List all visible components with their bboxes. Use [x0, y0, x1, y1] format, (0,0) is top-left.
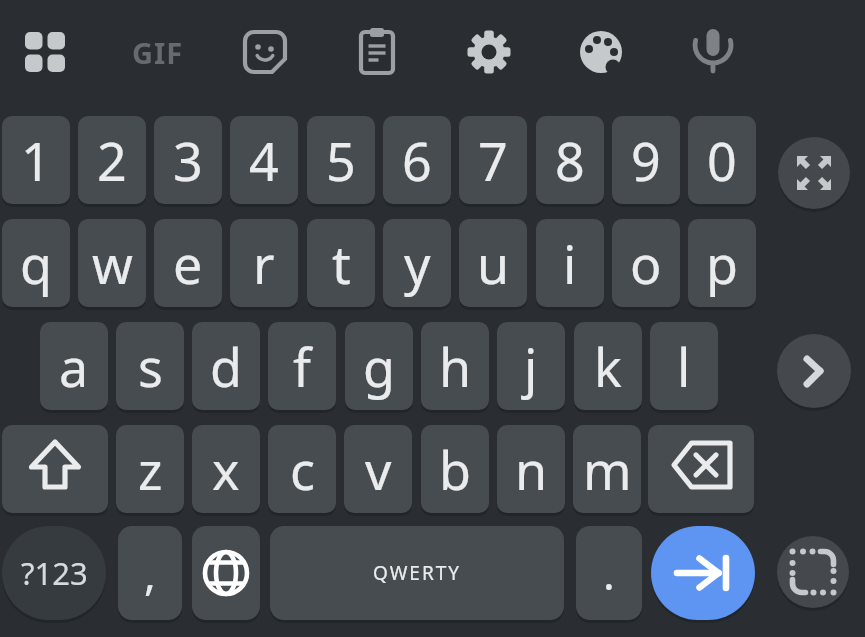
staticText: 9	[631, 125, 661, 196]
staticText: m	[583, 434, 632, 505]
button[interactable]	[792, 349, 836, 393]
button[interactable]: 6	[383, 116, 451, 204]
button[interactable]: v	[344, 425, 412, 513]
staticText: 2	[97, 125, 127, 196]
staticText: a	[59, 331, 89, 402]
staticText: q	[20, 228, 52, 299]
button[interactable]	[192, 526, 260, 620]
staticText: 6	[402, 125, 432, 196]
button[interactable]: 0	[688, 116, 756, 204]
button[interactable]: l	[650, 322, 718, 410]
staticText: QWERTY	[373, 560, 462, 586]
staticText: z	[138, 434, 163, 505]
button[interactable]	[778, 137, 850, 209]
staticText: n	[515, 434, 548, 505]
button[interactable]: n	[497, 425, 565, 513]
staticText: i	[563, 228, 577, 299]
button[interactable]	[671, 541, 735, 605]
staticText: t	[332, 228, 351, 299]
staticText: w	[92, 228, 133, 299]
button[interactable]: ,	[118, 526, 182, 620]
button[interactable]: y	[383, 219, 451, 307]
button[interactable]	[777, 536, 849, 608]
staticText: 1	[21, 125, 51, 196]
button[interactable]: x	[192, 425, 260, 513]
button[interactable]	[789, 148, 839, 198]
button[interactable]: 4	[230, 116, 298, 204]
button[interactable]	[786, 545, 840, 599]
button[interactable]: 3	[154, 116, 222, 204]
button[interactable]	[354, 29, 400, 75]
button[interactable]	[651, 526, 755, 620]
button[interactable]	[466, 29, 512, 75]
button[interactable]: 2	[78, 116, 146, 204]
button[interactable]: m	[573, 425, 641, 513]
button[interactable]: f	[268, 322, 336, 410]
button[interactable]: o	[612, 219, 680, 307]
staticText: o	[630, 228, 662, 299]
staticText: ,	[144, 543, 156, 603]
button[interactable]: q	[2, 219, 70, 307]
staticText: f	[293, 331, 311, 402]
button[interactable]: e	[154, 219, 222, 307]
button[interactable]: 7	[459, 116, 527, 204]
button[interactable]: 5	[307, 116, 375, 204]
button[interactable]: z	[116, 425, 184, 513]
staticText: d	[210, 331, 242, 402]
button[interactable]	[777, 334, 851, 408]
button[interactable]	[2, 425, 108, 513]
staticText: u	[477, 228, 510, 299]
staticText: p	[706, 228, 738, 299]
staticText: 8	[555, 125, 585, 196]
button[interactable]: GIF	[127, 30, 189, 74]
button[interactable]: .	[576, 526, 642, 620]
staticText: k	[594, 331, 622, 402]
staticText: 0	[707, 125, 737, 196]
staticText: ?123	[21, 552, 88, 594]
button[interactable]: i	[536, 219, 604, 307]
button[interactable]	[688, 25, 738, 75]
button[interactable]	[242, 29, 288, 75]
staticText: l	[677, 331, 691, 402]
button[interactable]: u	[459, 219, 527, 307]
staticText: 7	[478, 125, 508, 196]
staticText: GIF	[132, 33, 184, 72]
staticText: .	[603, 543, 615, 603]
button[interactable]	[29, 439, 81, 491]
button[interactable]: 1	[2, 116, 70, 204]
staticText: v	[365, 434, 392, 505]
button[interactable]: j	[497, 322, 565, 410]
button[interactable]	[201, 548, 251, 598]
button[interactable]: 9	[612, 116, 680, 204]
staticText: j	[524, 331, 538, 402]
button[interactable]: ?123	[2, 526, 106, 620]
button[interactable]: 8	[536, 116, 604, 204]
button[interactable]	[578, 29, 624, 75]
button[interactable]	[23, 30, 67, 74]
button[interactable]: c	[268, 425, 336, 513]
button[interactable]: b	[421, 425, 489, 513]
staticText: s	[138, 331, 163, 402]
staticText: 4	[249, 125, 279, 196]
button[interactable]: h	[421, 322, 489, 410]
button[interactable]: t	[307, 219, 375, 307]
staticText: x	[212, 434, 240, 505]
button[interactable]: k	[574, 322, 642, 410]
button[interactable]: QWERTY	[270, 526, 564, 620]
staticText: e	[173, 228, 203, 299]
staticText: r	[253, 228, 275, 299]
button[interactable]: g	[345, 322, 413, 410]
button[interactable]: r	[230, 219, 298, 307]
staticText: y	[404, 228, 431, 299]
staticText: 3	[173, 125, 203, 196]
button[interactable]: a	[40, 322, 108, 410]
staticText: 5	[326, 125, 356, 196]
button[interactable]: w	[78, 219, 146, 307]
staticText: b	[439, 434, 471, 505]
button[interactable]: d	[192, 322, 260, 410]
button[interactable]: p	[688, 219, 756, 307]
button[interactable]	[648, 425, 754, 513]
button[interactable]: s	[116, 322, 184, 410]
button[interactable]	[671, 435, 731, 495]
staticText: c	[290, 434, 315, 505]
